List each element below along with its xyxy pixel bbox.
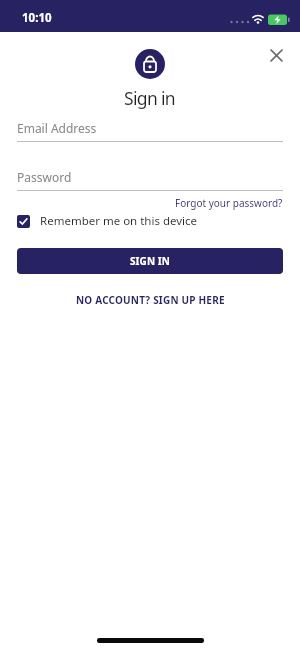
- button[interactable]: SIGN IN: [17, 248, 283, 274]
- staticText: Password: [17, 169, 72, 185]
- staticText: Sign in: [124, 86, 176, 110]
- button[interactable]: Remember me on this device: [17, 213, 283, 229]
- staticText: SIGN IN: [130, 254, 171, 268]
- staticText: Remember me on this device: [40, 213, 198, 229]
- button[interactable]: [262, 41, 290, 69]
- button[interactable]: Forgot your password?: [175, 196, 283, 210]
- staticText: Email Address: [17, 120, 97, 136]
- staticText: Forgot your password?: [175, 196, 283, 210]
- button[interactable]: NO ACCOUNT? SIGN UP HERE: [17, 293, 283, 307]
- staticText: 10:10: [22, 10, 52, 26]
- staticText: NO ACCOUNT? SIGN UP HERE: [76, 293, 225, 307]
